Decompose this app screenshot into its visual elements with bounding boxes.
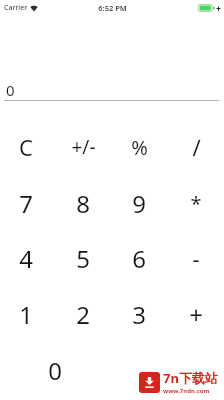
button[interactable]: 0 (29, 345, 81, 395)
staticText: 4 (19, 242, 33, 275)
button[interactable]: 3 (113, 289, 165, 339)
button[interactable]: 8 (57, 178, 109, 228)
staticText: 0 (6, 80, 15, 100)
button[interactable]: 6 (113, 233, 165, 283)
staticText: www.7ndn.com (163, 387, 210, 395)
button[interactable]: 7 (0, 178, 52, 228)
staticText: 2 (76, 298, 90, 331)
staticText: 7 (19, 187, 33, 220)
button[interactable]: % (113, 122, 165, 172)
staticText: 8 (76, 187, 90, 220)
staticText: 6 (132, 242, 146, 275)
staticText: 3 (132, 298, 146, 331)
staticText: 0 (48, 354, 62, 387)
staticText: Carrier (4, 3, 28, 13)
button[interactable]: C (0, 122, 52, 172)
staticText: / (192, 132, 201, 162)
staticText: * (190, 190, 202, 217)
staticText: % (131, 134, 148, 161)
button[interactable]: + (170, 289, 222, 339)
staticText: C (19, 132, 33, 162)
button[interactable]: * (170, 178, 222, 228)
button[interactable]: 1 (0, 289, 52, 339)
button[interactable]: 9 (113, 178, 165, 228)
staticText: 6:52 PM (98, 3, 127, 13)
button[interactable]: +/- (57, 122, 109, 172)
staticText: 7n下载站 (163, 369, 218, 387)
staticText: 9 (132, 187, 146, 220)
staticText: 1 (19, 298, 33, 331)
staticText: - (192, 243, 200, 273)
button[interactable]: 2 (57, 289, 109, 339)
button[interactable]: / (170, 122, 222, 172)
staticText: + (189, 298, 203, 331)
button[interactable]: 4 (0, 233, 52, 283)
staticText: 5 (76, 242, 90, 275)
staticText: +/- (71, 134, 96, 160)
button[interactable]: - (170, 233, 222, 283)
button[interactable]: 5 (57, 233, 109, 283)
